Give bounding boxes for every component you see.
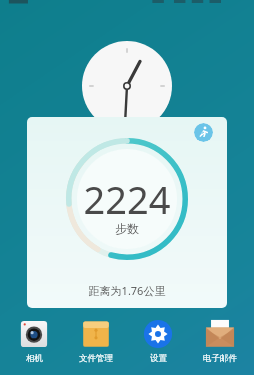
button[interactable]: Activity — [27, 117, 227, 308]
other: File manager — [80, 318, 112, 350]
button[interactable]: Email — [192, 315, 248, 364]
staticText: 相机 — [26, 353, 43, 364]
other: Email — [204, 318, 236, 350]
other: Camera — [18, 318, 50, 350]
other: Settings — [142, 318, 174, 350]
staticText: 电子邮件 — [203, 353, 237, 364]
button[interactable]: Activity — [194, 123, 213, 142]
staticText: 文件管理 — [79, 353, 113, 364]
button[interactable]: File manager — [68, 315, 124, 364]
button[interactable]: Settings — [130, 315, 186, 364]
staticText: 步数 — [66, 221, 188, 236]
button[interactable]: Clock widget — [82, 41, 172, 131]
staticText: 距离为1.76公里 — [27, 283, 227, 298]
staticText: 2224 — [66, 173, 188, 225]
staticText: 设置 — [150, 353, 167, 364]
button[interactable]: Camera — [6, 315, 62, 364]
